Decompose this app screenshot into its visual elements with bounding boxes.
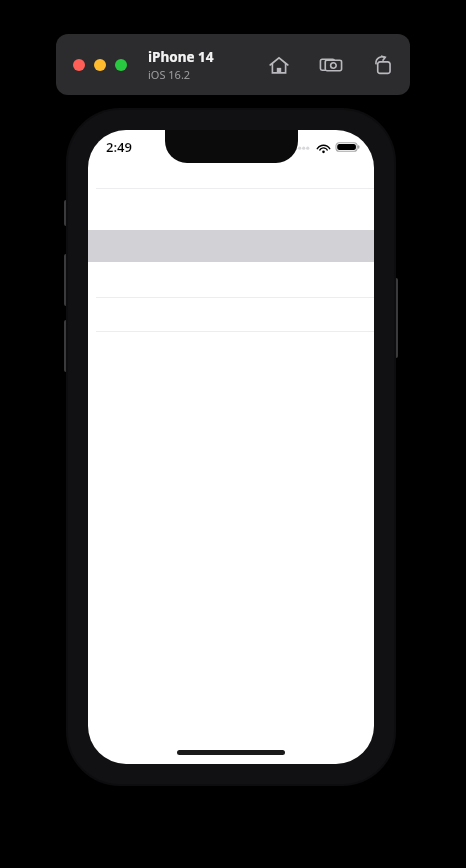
staticText: iOS 16.2 xyxy=(148,67,191,82)
staticText: iPhone 14 xyxy=(148,48,214,66)
staticText: 2:49 xyxy=(106,138,132,156)
button[interactable]: Home xyxy=(264,50,294,80)
button[interactable]: Screenshot xyxy=(316,50,346,80)
button[interactable]: Minimize xyxy=(94,59,106,71)
button[interactable]: Close xyxy=(73,59,85,71)
button[interactable]: Share xyxy=(368,50,398,80)
button[interactable]: Zoom xyxy=(115,59,127,71)
